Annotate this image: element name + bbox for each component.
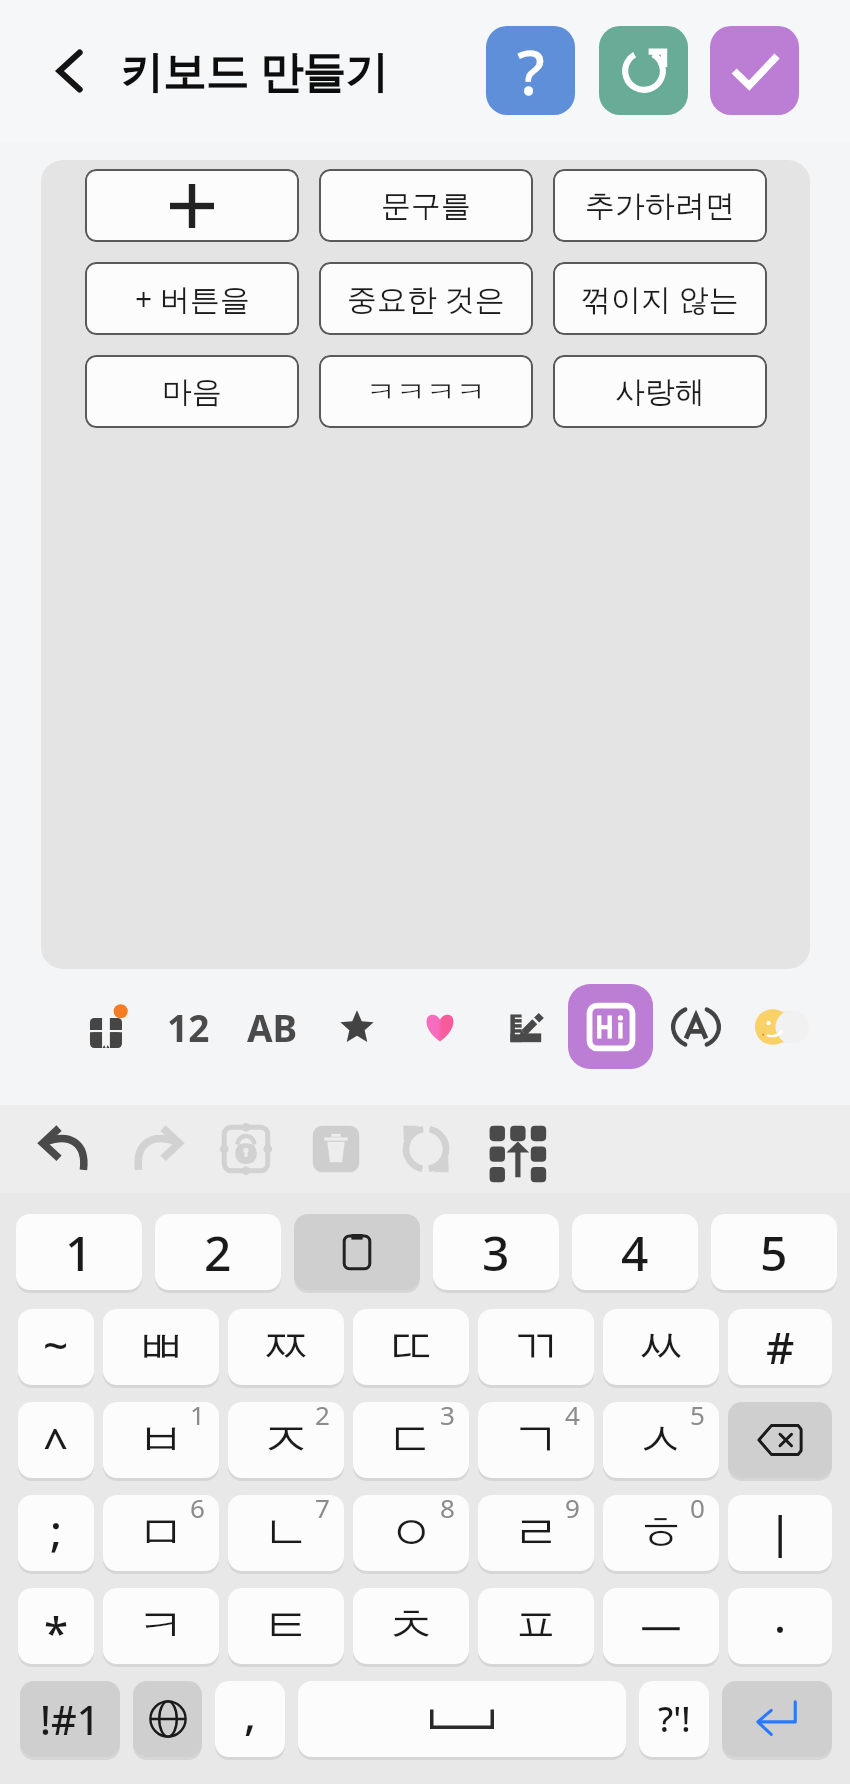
button[interactable]: ㅡ bbox=[603, 1588, 719, 1664]
button[interactable]: ㅋ bbox=[103, 1588, 219, 1664]
button[interactable]: AB bbox=[238, 993, 306, 1061]
button[interactable]: Hearts bbox=[406, 993, 474, 1061]
button[interactable]: ㅃ bbox=[103, 1309, 219, 1385]
button[interactable]: !#1 bbox=[20, 1681, 120, 1757]
button[interactable]: ㅆ bbox=[603, 1309, 719, 1385]
button[interactable]: ㅍ bbox=[478, 1588, 594, 1664]
staticText: ; bbox=[50, 1500, 63, 1560]
staticText: 4 bbox=[565, 1402, 580, 1432]
button[interactable]: * bbox=[18, 1588, 94, 1664]
button[interactable]: Redo bbox=[122, 1115, 190, 1183]
button[interactable]: clip bbox=[294, 1214, 420, 1290]
button[interactable]: 12 bbox=[154, 993, 222, 1061]
button[interactable]: ^ bbox=[18, 1402, 94, 1478]
button[interactable]: space bbox=[298, 1681, 626, 1757]
button[interactable]: Sync bbox=[392, 1115, 460, 1183]
button[interactable]: 사랑해 bbox=[553, 355, 767, 428]
staticText: ㄸ bbox=[387, 1317, 435, 1377]
staticText: 사랑해 bbox=[615, 373, 705, 411]
button[interactable]: Lock bbox=[212, 1115, 280, 1183]
button[interactable]: Delete bbox=[302, 1115, 370, 1183]
button[interactable]: | bbox=[728, 1495, 832, 1571]
staticText: ㅈ bbox=[262, 1410, 310, 1470]
button[interactable]: Back bbox=[26, 27, 114, 115]
button[interactable]: ㄱ bbox=[478, 1402, 594, 1478]
button[interactable]: Help bbox=[486, 26, 575, 115]
staticText: 3 bbox=[482, 1220, 510, 1285]
staticText: ㅋㅋㅋㅋ bbox=[366, 373, 486, 411]
button[interactable]: ㄷ bbox=[353, 1402, 469, 1478]
staticText: ㄷ bbox=[387, 1410, 435, 1470]
staticText: · bbox=[774, 1598, 786, 1658]
staticText: ㄲ bbox=[512, 1317, 560, 1377]
button[interactable]: ; bbox=[18, 1495, 94, 1571]
button[interactable]: enter bbox=[722, 1681, 832, 1757]
button[interactable]: ㅉ bbox=[228, 1309, 344, 1385]
staticText: 1 bbox=[190, 1402, 205, 1432]
button[interactable]: 2 bbox=[155, 1214, 281, 1290]
button[interactable]: globe bbox=[133, 1681, 202, 1757]
staticText: 2 bbox=[315, 1402, 330, 1432]
button[interactable]: , bbox=[215, 1681, 285, 1757]
button[interactable]: ㅇ bbox=[353, 1495, 469, 1571]
button[interactable]: 5 bbox=[711, 1214, 837, 1290]
staticText: ㅡ bbox=[637, 1588, 685, 1647]
button[interactable]: ㅎ bbox=[603, 1495, 719, 1571]
staticText: 5 bbox=[690, 1402, 705, 1432]
button[interactable]: ㄹ bbox=[478, 1495, 594, 1571]
staticText: 3 bbox=[440, 1402, 455, 1432]
button[interactable]: Reset bbox=[599, 26, 688, 115]
staticText: AB bbox=[247, 1002, 298, 1052]
staticText: ㅃ bbox=[137, 1317, 185, 1377]
staticText: * bbox=[44, 1602, 69, 1662]
staticText: 4 bbox=[621, 1220, 649, 1285]
staticText: 마음 bbox=[162, 373, 222, 411]
button[interactable]: 추가하려면 bbox=[553, 169, 767, 242]
staticText: 9 bbox=[565, 1495, 580, 1525]
staticText: ~ bbox=[43, 1314, 69, 1374]
staticText: , bbox=[244, 1683, 257, 1743]
button[interactable]: Stickers bbox=[76, 993, 144, 1061]
button[interactable]: ㄸ bbox=[353, 1309, 469, 1385]
button[interactable]: ㅌ bbox=[228, 1588, 344, 1664]
button[interactable]: Layout bbox=[482, 1115, 550, 1183]
button[interactable]: ㄲ bbox=[478, 1309, 594, 1385]
button[interactable]: ㅈ bbox=[228, 1402, 344, 1478]
button[interactable]: Font bbox=[662, 993, 730, 1061]
button[interactable]: 중요한 것은 bbox=[319, 262, 533, 335]
button[interactable]: · bbox=[728, 1588, 832, 1664]
button[interactable]: ㅂ bbox=[103, 1402, 219, 1478]
button[interactable]: ~ bbox=[18, 1309, 94, 1385]
button[interactable]: ㅊ bbox=[353, 1588, 469, 1664]
button[interactable]: bksp bbox=[728, 1402, 832, 1478]
button[interactable]: ?'! bbox=[639, 1681, 709, 1757]
button[interactable]: 문구를 bbox=[319, 169, 533, 242]
staticText: ㅂ bbox=[137, 1410, 185, 1470]
button[interactable]: Add phrase bbox=[85, 169, 299, 242]
button[interactable]: 3 bbox=[433, 1214, 559, 1290]
staticText: 8 bbox=[440, 1495, 455, 1525]
button[interactable]: ㄴ bbox=[228, 1495, 344, 1571]
staticText: ㅊ bbox=[387, 1596, 435, 1656]
button[interactable]: Undo bbox=[32, 1115, 100, 1183]
button[interactable]: 4 bbox=[572, 1214, 698, 1290]
button[interactable]: 마음 bbox=[85, 355, 299, 428]
button[interactable]: Phrases bbox=[568, 984, 653, 1069]
button[interactable]: Draw bbox=[492, 993, 560, 1061]
staticText: ^ bbox=[43, 1414, 69, 1474]
staticText: + 버튼을 bbox=[135, 278, 250, 319]
button[interactable]: ㅋㅋㅋㅋ bbox=[319, 355, 533, 428]
staticText: ㅋ bbox=[137, 1596, 185, 1656]
button[interactable]: + 버튼을 bbox=[85, 262, 299, 335]
button[interactable]: 1 bbox=[16, 1214, 142, 1290]
staticText: ㅇ bbox=[387, 1503, 435, 1563]
button[interactable]: Done bbox=[710, 26, 799, 115]
staticText: ㅁ bbox=[137, 1503, 185, 1563]
button[interactable]: Emoji bbox=[741, 993, 809, 1061]
button[interactable]: Favorites bbox=[323, 993, 391, 1061]
button[interactable]: ㅅ bbox=[603, 1402, 719, 1478]
button[interactable]: ㅁ bbox=[103, 1495, 219, 1571]
button[interactable]: 꺾이지 않는 bbox=[553, 262, 767, 335]
staticText: 2 bbox=[204, 1220, 232, 1285]
button[interactable]: # bbox=[728, 1309, 832, 1385]
